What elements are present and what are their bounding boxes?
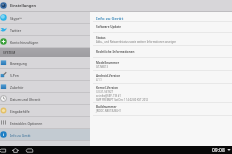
staticText: Konto hinzufügen [10, 40, 39, 44]
staticText: 09:08 [212, 147, 225, 154]
button[interactable]: Eingabehilfe [0, 105, 90, 116]
staticText: JROOC.N8013UBLH1 [96, 109, 121, 113]
staticText: Bewegung [10, 61, 27, 65]
button[interactable]: Android-Version [90, 74, 232, 85]
button[interactable]: Zubehör [0, 81, 90, 92]
staticText: Skype™ [10, 16, 22, 20]
button[interactable]: Status [90, 36, 232, 49]
staticText: Buildnummer [96, 105, 117, 109]
staticText: Twitter [10, 28, 22, 32]
button[interactable]: Einstellungen [0, 0, 90, 11]
staticText: 4.1.1 [96, 78, 102, 82]
button[interactable]: Home [10, 146, 20, 154]
button[interactable]: Rechtliche Informationen [90, 50, 232, 59]
staticText: 3.0.31-561927 se.infra@SEP-118 #1 SMP PR… [96, 90, 149, 102]
button[interactable]: Back [0, 146, 7, 154]
staticText: Eingabehilfe [10, 109, 30, 113]
staticText: Akku-, und Netzwerkstatus sowie weitere … [96, 40, 177, 44]
button[interactable]: Software Update [90, 25, 232, 34]
button[interactable]: Konto hinzufügen [0, 36, 90, 47]
staticText: Einstellungen [10, 3, 36, 8]
staticText: Software Update [96, 25, 122, 29]
button[interactable]: Kernel-Version [90, 86, 232, 104]
button[interactable]: Info zu Gerät [0, 129, 90, 140]
staticText: Rechtliche Informationen [96, 50, 135, 54]
button[interactable]: Datum und Uhrzeit [0, 93, 90, 104]
staticText: S-Pen [10, 73, 19, 77]
staticText: Datum und Uhrzeit [10, 97, 41, 101]
staticText: Android-Version [96, 74, 121, 78]
staticText: Info zu Gerät [96, 16, 124, 22]
button[interactable]: S-Pen [0, 69, 90, 80]
staticText: Info zu Gerät [10, 133, 31, 137]
button[interactable]: Twitter [0, 24, 90, 35]
staticText: GT-N8013 [96, 65, 108, 69]
button[interactable]: Skype™ [0, 12, 90, 23]
staticText: Status [96, 36, 106, 40]
staticText: Zubehör [10, 85, 24, 89]
button[interactable]: Recent apps [24, 146, 34, 154]
staticText: SYSTEM [3, 51, 16, 55]
button[interactable]: Bewegung [0, 57, 90, 68]
staticText: Kernel-Version [96, 86, 118, 90]
staticText: Modellnummer [96, 61, 120, 65]
staticText: Entwickler-Optionen [10, 121, 43, 125]
button[interactable]: Entwickler-Optionen [0, 117, 90, 128]
button[interactable]: Buildnummer [90, 105, 232, 116]
button[interactable]: Modellnummer [90, 61, 232, 72]
